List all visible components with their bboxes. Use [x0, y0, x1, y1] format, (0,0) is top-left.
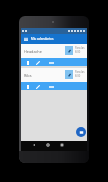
button[interactable]: Alarm: [65, 70, 73, 79]
button[interactable]: Edit: [34, 59, 41, 66]
staticText: Headache: [24, 49, 42, 54]
staticText: Para las: [75, 70, 85, 74]
button[interactable]: Back: [31, 142, 37, 148]
button[interactable]: Headache: [21, 44, 87, 66]
button[interactable]: Alarm: [65, 46, 73, 55]
button[interactable]: Details: [24, 59, 31, 66]
button[interactable]: Details: [24, 83, 31, 90]
button[interactable]: Edit: [34, 83, 41, 90]
staticText: Mis calendarios: [31, 37, 54, 41]
button[interactable]: Add: [76, 127, 86, 137]
button[interactable]: Recents: [59, 142, 65, 148]
staticText: Para las: [75, 46, 85, 50]
staticText: 8:00: [75, 50, 81, 54]
button[interactable]: Home: [45, 142, 51, 148]
button[interactable]: Ribs: [21, 68, 87, 90]
button[interactable]: Remove: [47, 59, 55, 66]
staticText: 8:00: [75, 74, 81, 78]
button[interactable]: Remove: [47, 83, 55, 90]
button[interactable]: Menu: [21, 34, 87, 44]
staticText: Ribs: [24, 73, 32, 78]
button[interactable]: Menu: [22, 36, 29, 43]
